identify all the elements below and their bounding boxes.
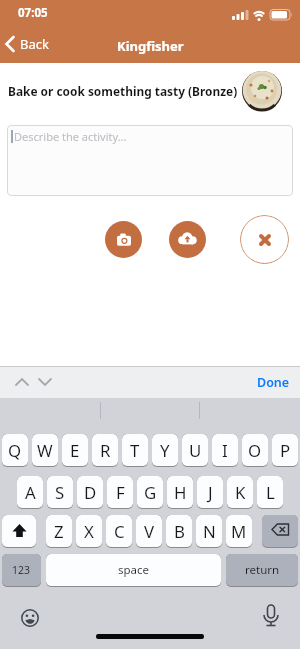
button[interactable]: A (17, 476, 43, 509)
staticText: 07:05 (18, 5, 48, 21)
staticText: A (25, 481, 36, 504)
button[interactable]: Back (5, 35, 49, 53)
button[interactable] (38, 377, 52, 387)
staticText: Q (8, 439, 22, 462)
staticText: E (70, 439, 80, 462)
staticText: J (208, 481, 213, 504)
button[interactable]: space (46, 554, 221, 587)
button[interactable] (2, 515, 36, 548)
staticText: Kingfisher (117, 37, 184, 55)
button[interactable]: Z (46, 515, 72, 548)
staticText: space (118, 562, 150, 578)
button[interactable]: O (242, 434, 268, 467)
button[interactable]: M (226, 515, 252, 548)
staticText: L (266, 481, 275, 504)
staticText: K (235, 481, 246, 504)
staticText: S (55, 481, 65, 504)
button[interactable]: R (92, 434, 118, 467)
button[interactable] (105, 221, 142, 258)
button[interactable] (21, 609, 39, 627)
staticText: Y (160, 439, 170, 462)
staticText: D (84, 481, 97, 504)
staticText: Back (20, 35, 49, 53)
button[interactable]: K (227, 476, 253, 509)
staticText: Bake or cook something tasty (Bronze) (8, 83, 238, 99)
button[interactable]: Q (2, 434, 28, 467)
staticText: H (174, 481, 187, 504)
button[interactable]: E (62, 434, 88, 467)
button[interactable]: I (212, 434, 238, 467)
button[interactable]: X (76, 515, 102, 548)
button[interactable]: L (257, 476, 283, 509)
button[interactable]: F (107, 476, 133, 509)
button[interactable]: B (166, 515, 192, 548)
staticText: return (245, 562, 280, 578)
button[interactable]: T (122, 434, 148, 467)
staticText: N (203, 520, 216, 543)
button[interactable]: Describe the activity... (7, 125, 293, 196)
staticText: Z (54, 520, 64, 543)
button[interactable]: N (196, 515, 222, 548)
button[interactable] (240, 215, 289, 264)
staticText: U (189, 439, 202, 462)
button[interactable]: 123 (2, 554, 41, 587)
button[interactable]: Y (152, 434, 178, 467)
staticText: I (222, 439, 228, 462)
staticText: O (248, 439, 262, 462)
staticText: C (114, 520, 125, 543)
button[interactable]: C (106, 515, 132, 548)
button[interactable]: Done (257, 374, 290, 391)
staticText: F (116, 481, 125, 504)
button[interactable] (262, 604, 280, 630)
staticText: G (144, 481, 157, 504)
staticText: 123 (12, 563, 31, 577)
button[interactable] (169, 221, 206, 258)
button[interactable]: V (136, 515, 162, 548)
staticText: X (84, 520, 94, 543)
button[interactable]: P (272, 434, 298, 467)
button[interactable] (262, 515, 298, 548)
staticText: Describe the activity... (14, 129, 127, 144)
button[interactable]: D (77, 476, 103, 509)
staticText: R (100, 439, 111, 462)
staticText: V (144, 520, 155, 543)
button[interactable]: S (47, 476, 73, 509)
button[interactable]: return (226, 554, 298, 587)
button[interactable] (15, 377, 29, 387)
staticText: M (231, 520, 247, 543)
staticText: P (280, 439, 291, 462)
button[interactable]: H (167, 476, 193, 509)
staticText: T (130, 439, 140, 462)
staticText: W (37, 439, 53, 462)
button[interactable]: J (197, 476, 223, 509)
button[interactable]: G (137, 476, 163, 509)
staticText: B (174, 520, 185, 543)
button[interactable]: U (182, 434, 208, 467)
button[interactable]: W (32, 434, 58, 467)
